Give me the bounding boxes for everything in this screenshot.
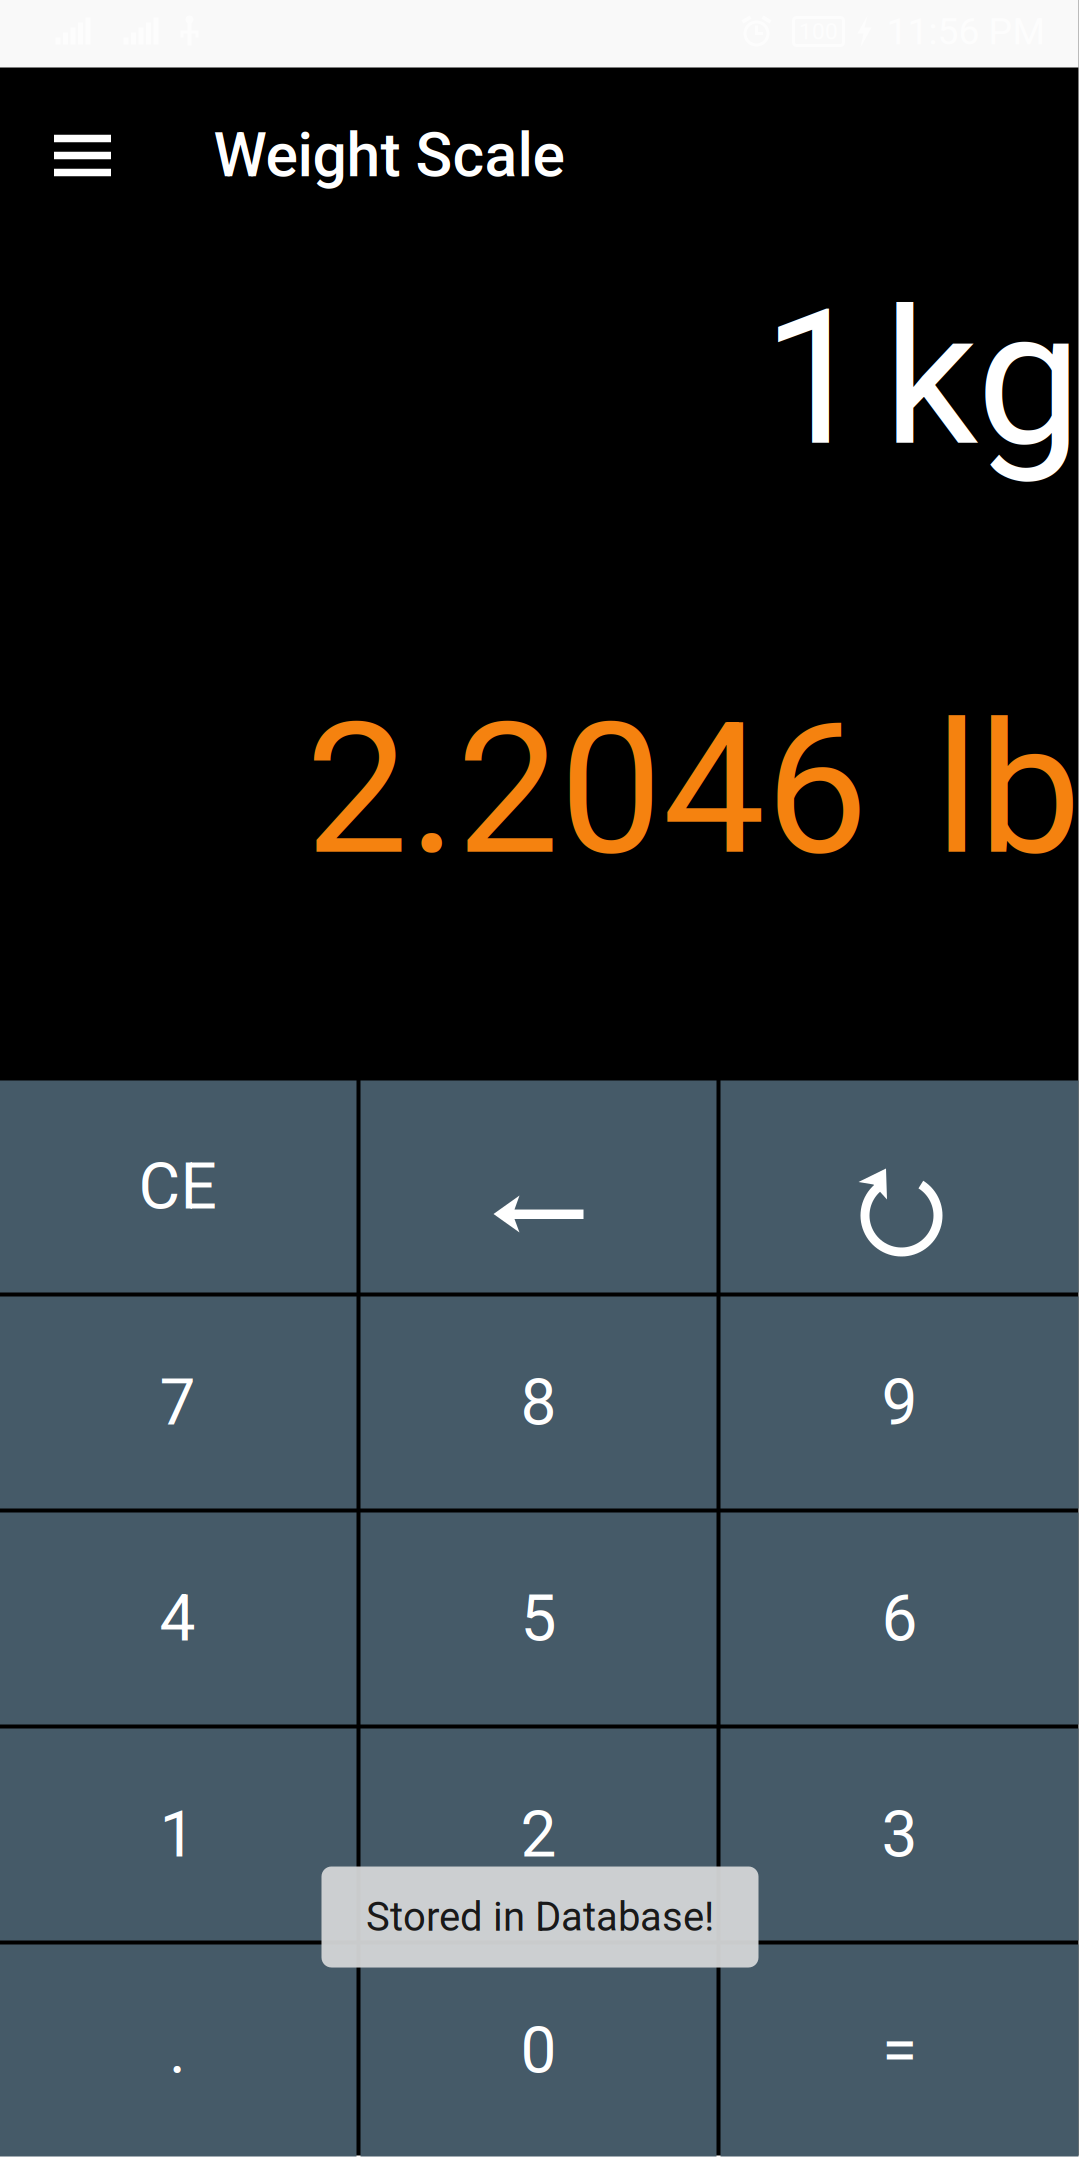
staticText: Weight Scale	[213, 120, 564, 191]
button[interactable]: Open menu	[0, 67, 213, 243]
button[interactable]: 3	[720, 1728, 1078, 1940]
staticText: 6	[881, 1581, 917, 1656]
button[interactable]: 2	[360, 1728, 716, 1940]
staticText: CE	[138, 1149, 216, 1224]
button[interactable]: 5	[360, 1512, 716, 1724]
staticText: 5	[520, 1581, 556, 1656]
staticText: 9	[881, 1365, 917, 1440]
staticText: 7	[159, 1365, 195, 1440]
staticText: 8	[520, 1365, 556, 1440]
staticText: 0	[520, 2013, 556, 2088]
button[interactable]: Decimal point	[0, 1944, 356, 2156]
button[interactable]: 0	[360, 1944, 716, 2156]
button[interactable]: 9	[720, 1296, 1078, 1508]
staticText: lb	[934, 682, 1080, 896]
button[interactable]: 1	[0, 1728, 356, 1940]
staticText: 4	[159, 1581, 195, 1656]
staticText: =	[882, 2013, 917, 2088]
staticText: 3	[881, 1797, 917, 1872]
staticText: 2	[520, 1797, 556, 1872]
staticText: 2.2046	[305, 682, 868, 896]
button[interactable]: 7	[0, 1296, 356, 1508]
button[interactable]: 4	[0, 1512, 356, 1724]
staticText: Stored in Database!	[366, 1894, 714, 1940]
button[interactable]: Reset	[720, 1080, 1078, 1292]
button[interactable]: Backspace	[360, 1080, 716, 1292]
staticText: 1	[762, 269, 867, 488]
button[interactable]: 6	[720, 1512, 1078, 1724]
staticText: .	[169, 2013, 186, 2088]
button[interactable]: Equals	[720, 1944, 1078, 2156]
staticText: kg	[883, 269, 1080, 488]
button[interactable]: 8	[360, 1296, 716, 1508]
staticText: 1	[159, 1797, 195, 1872]
button[interactable]: Clear entry	[0, 1080, 356, 1292]
